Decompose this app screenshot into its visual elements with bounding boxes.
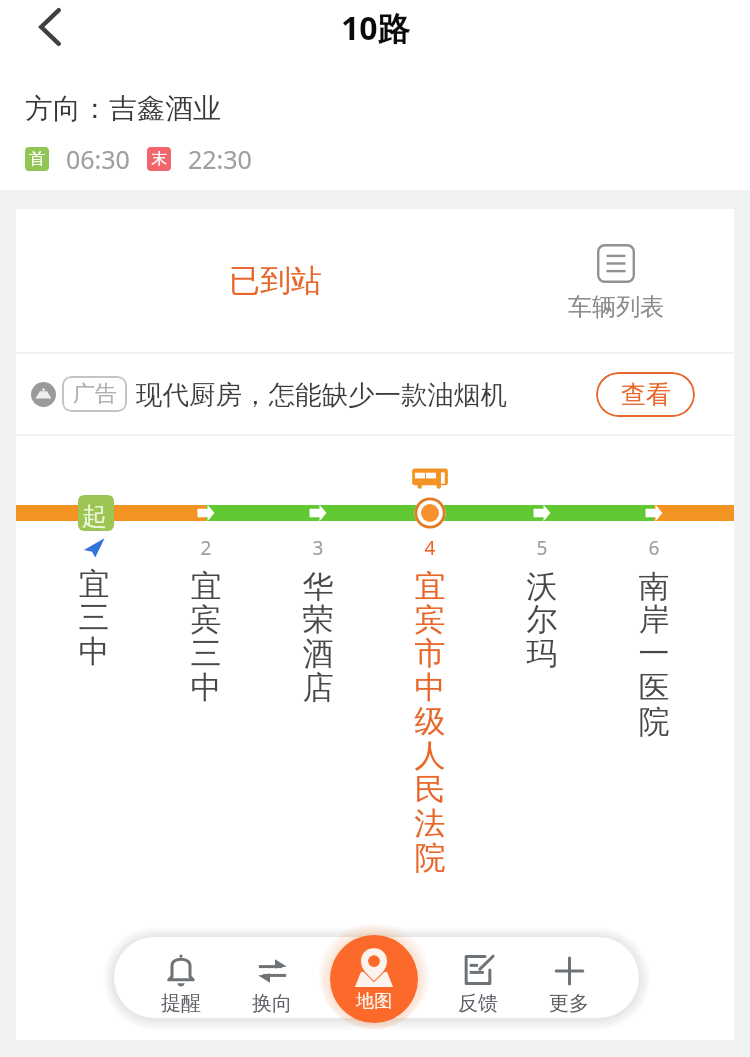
staticText: 更多 (531, 991, 607, 1016)
staticText: 宜 三 中 (62, 565, 126, 672)
staticText: 22:30 (188, 142, 252, 176)
staticText: 地图 (330, 990, 418, 1013)
staticText: 06:30 (66, 142, 130, 176)
staticText: 末 (151, 149, 167, 169)
staticText: 5 (510, 535, 574, 561)
staticText: 4 (398, 535, 462, 561)
button[interactable]: 车辆列表 (568, 244, 664, 322)
staticText: 宜 宾 市 中 级 人 民 法 院 (398, 567, 462, 878)
staticText: 3 (286, 535, 350, 561)
staticText: 华 荣 酒 店 (286, 567, 350, 708)
staticText: 现代厨房，怎能缺少一款油烟机 (136, 378, 507, 411)
button[interactable]: 提醒 (143, 937, 219, 1017)
button[interactable]: 更多 (531, 937, 607, 1017)
staticText: 反馈 (440, 991, 516, 1016)
staticText: 查看 (621, 379, 671, 410)
staticText: 提醒 (143, 991, 219, 1016)
button[interactable]: Back (0, 0, 100, 54)
button[interactable]: 宜 三 中 (62, 535, 126, 672)
button[interactable]: 3 (286, 535, 350, 708)
button[interactable]: 2 (174, 535, 238, 708)
staticText: 10路 (341, 6, 410, 50)
button[interactable]: 5 (510, 535, 574, 674)
button[interactable]: 反馈 (440, 937, 516, 1017)
staticText: 已到站 (229, 261, 322, 300)
button[interactable]: 地图 (330, 935, 418, 1023)
staticText: 方向：吉鑫酒业 (25, 91, 221, 126)
staticText: 6 (622, 535, 686, 561)
staticText: 沃 尔 玛 (510, 567, 574, 674)
staticText: 起 (82, 501, 107, 532)
button[interactable]: 换向 (234, 937, 310, 1017)
button[interactable]: 查看 (596, 372, 695, 417)
button[interactable]: 6 (622, 535, 686, 742)
staticText: 2 (174, 535, 238, 561)
staticText: 换向 (234, 991, 310, 1016)
staticText: 首 (29, 149, 45, 169)
staticText: 广告 (73, 380, 117, 408)
staticText: 宜 宾 三 中 (174, 567, 238, 708)
staticText: 南 岸 一 医 院 (622, 567, 686, 742)
staticText: 车辆列表 (568, 292, 664, 322)
button[interactable]: 4 (398, 535, 462, 878)
